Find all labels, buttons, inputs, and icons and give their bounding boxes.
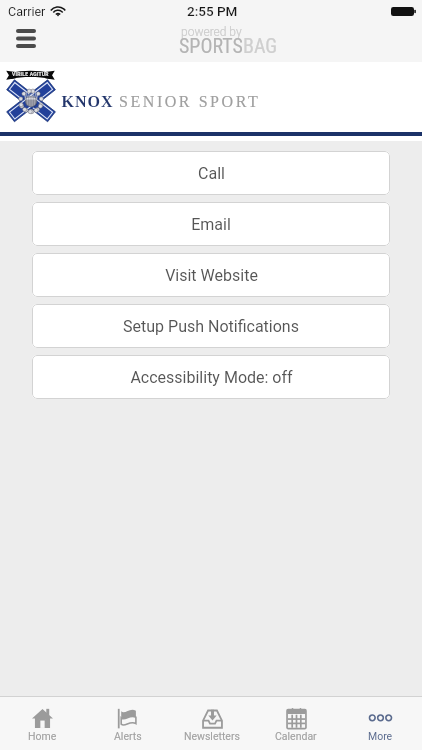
staticText: Visit Website [165,266,258,285]
button[interactable]: Alerts [85,697,170,750]
button[interactable]: More [338,697,422,750]
staticText: SPORTS [179,34,243,57]
button[interactable]: Visit Website [32,253,390,297]
staticText: powered by [181,25,242,39]
staticText: Setup Push Notifications [123,317,299,336]
staticText: Carrier [8,4,46,19]
button[interactable]: Email [32,202,390,246]
staticText: More [368,730,393,742]
button[interactable]: Newsletters [170,697,254,750]
staticText: SENIOR SPORT [119,93,261,111]
button[interactable]: Home [0,697,85,750]
button[interactable]: Accessibility Mode: off [32,355,390,399]
staticText: BAG [243,34,278,57]
staticText: Calendar [275,730,317,742]
staticText: 2:55 PM [187,3,238,19]
staticText: VIRILE AGITUR [12,71,49,77]
staticText: Accessibility Mode: off [130,368,293,387]
staticText: Newsletters [184,730,240,742]
staticText: Email [191,215,231,234]
button[interactable]: Setup Push Notifications [32,304,390,348]
staticText: Call [198,164,225,183]
staticText: Alerts [114,730,142,742]
button[interactable]: Calendar [254,697,338,750]
button[interactable]: Call [32,151,390,195]
staticText: KNOX [61,93,113,111]
button[interactable]: Open navigation menu [3,26,49,56]
staticText: Home [28,730,57,742]
